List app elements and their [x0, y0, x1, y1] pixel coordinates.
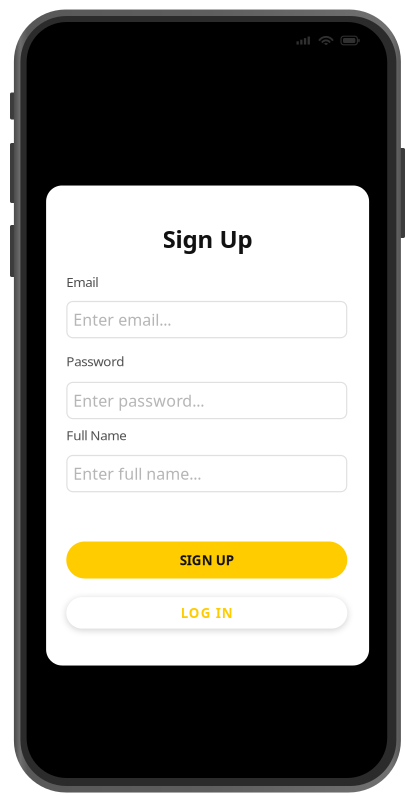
button[interactable]: L O G I N: [66, 597, 347, 629]
staticText: Sign Up: [163, 223, 253, 255]
staticText: Enter full name...: [73, 463, 201, 484]
button[interactable]: Enter password...: [66, 382, 347, 419]
button[interactable]: Enter email...: [66, 301, 347, 338]
button[interactable]: SIGN UP: [66, 541, 347, 578]
staticText: Password: [66, 352, 124, 370]
staticText: Email: [66, 273, 98, 291]
button[interactable]: Enter full name...: [66, 455, 347, 492]
staticText: Enter email...: [73, 309, 171, 330]
staticText: L O G I N: [181, 604, 233, 622]
staticText: Full Name: [66, 426, 127, 444]
staticText: Enter password...: [73, 390, 204, 411]
staticText: SIGN UP: [180, 551, 234, 569]
